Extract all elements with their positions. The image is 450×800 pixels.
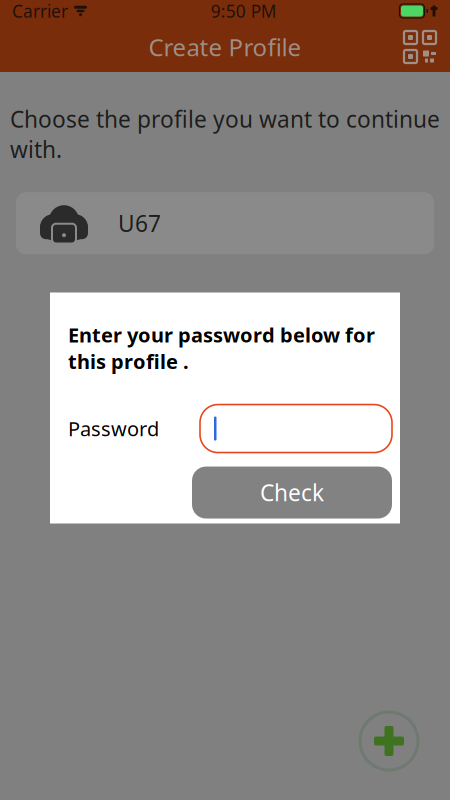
button[interactable]: Check [192, 467, 392, 519]
button[interactable]: U67 [16, 192, 434, 254]
staticText: U67 [118, 208, 161, 238]
button[interactable]: Password field [200, 405, 392, 453]
staticText: Choose the profile you want to continue … [10, 104, 440, 164]
staticText: Check [260, 477, 324, 508]
staticText: Enter your password below for this profi… [68, 321, 375, 374]
staticText: Create Profile [148, 31, 301, 63]
button[interactable]: Add profile [358, 710, 420, 772]
button[interactable]: Scan QR code [398, 25, 442, 69]
staticText: Carrier [12, 0, 68, 22]
staticText: 9:50 PM [211, 0, 277, 22]
staticText: Password [68, 415, 159, 442]
